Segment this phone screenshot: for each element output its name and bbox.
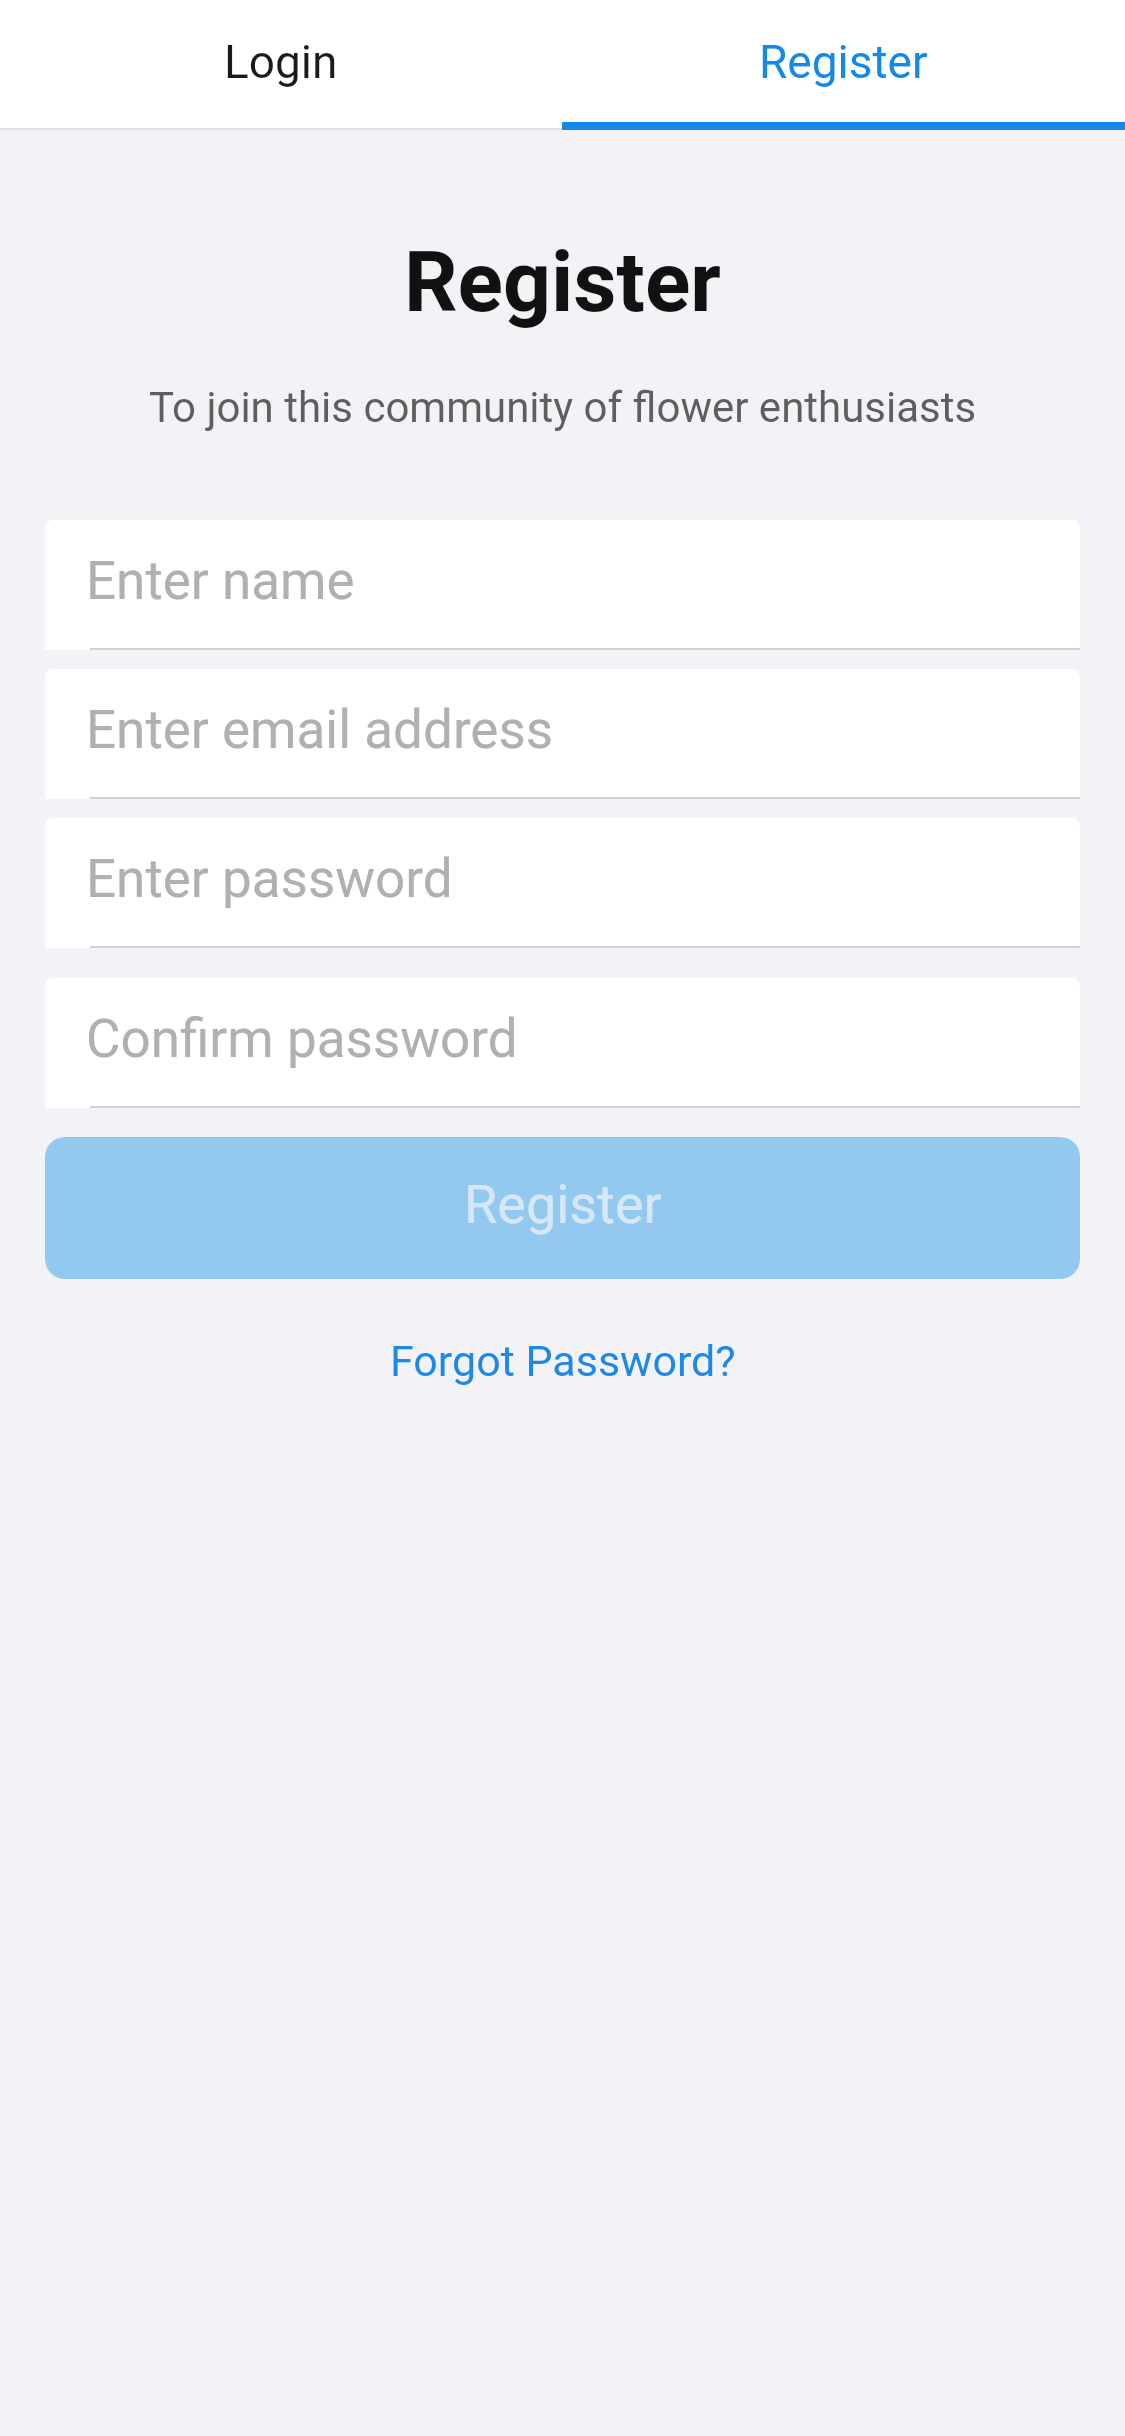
button[interactable]: Enter name [45, 520, 1080, 650]
button[interactable]: Enter password [45, 818, 1080, 948]
staticText: Enter email address [86, 699, 554, 761]
button[interactable]: Confirm password [45, 978, 1080, 1108]
button[interactable]: Enter email address [45, 669, 1080, 799]
staticText: To join this community of flower enthusi… [149, 383, 977, 432]
staticText: Forgot Password? [390, 1336, 736, 1386]
button[interactable]: Register [45, 1137, 1080, 1279]
staticText: Confirm password [86, 1008, 518, 1070]
staticText: Register [464, 1173, 662, 1236]
staticText: Register [404, 233, 721, 331]
staticText: Enter name [86, 550, 355, 612]
staticText: Register [759, 35, 928, 89]
button[interactable]: Register [562, 0, 1125, 130]
button[interactable]: Forgot Password? [390, 1336, 736, 1386]
button[interactable]: Login [0, 0, 562, 130]
staticText: Enter password [86, 848, 453, 910]
staticText: Login [224, 35, 338, 89]
